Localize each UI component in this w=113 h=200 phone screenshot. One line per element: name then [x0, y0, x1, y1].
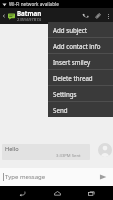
staticText: Add subject [53, 26, 88, 34]
staticText: Send [53, 106, 68, 114]
staticText: 2355697874 [17, 17, 41, 23]
button[interactable]: Settings [48, 86, 113, 101]
button[interactable]: Back [0, 8, 8, 24]
button[interactable]: Add subject [48, 22, 113, 37]
staticText: Hello [5, 145, 19, 153]
staticText: Wi-Fi network available [9, 1, 59, 7]
button[interactable]: More options [104, 8, 113, 24]
staticText: Delete thread [53, 74, 93, 82]
button[interactable]: Home [45, 186, 69, 200]
button[interactable]: Batman [17, 9, 78, 23]
button[interactable]: Call [78, 8, 91, 24]
staticText: Batman [17, 9, 42, 17]
staticText: 3:33PM Sent [56, 153, 81, 159]
button[interactable]: Type message [3, 168, 93, 186]
staticText: Type message [5, 173, 46, 181]
button[interactable]: Contact photo [98, 143, 112, 157]
button[interactable]: Hello [2, 144, 90, 160]
button[interactable]: Attach [91, 8, 104, 24]
button[interactable]: Send [93, 168, 113, 186]
button[interactable]: Send [48, 102, 113, 117]
button[interactable]: Back [10, 186, 34, 200]
button[interactable]: Insert smiley [48, 54, 113, 69]
staticText: Settings [53, 90, 77, 98]
staticText: Insert smiley [53, 58, 91, 66]
staticText: Add contact info [53, 42, 101, 50]
button[interactable]: Recent apps [79, 186, 103, 200]
button[interactable]: Add contact info [48, 38, 113, 53]
button[interactable]: Delete thread [48, 70, 113, 85]
